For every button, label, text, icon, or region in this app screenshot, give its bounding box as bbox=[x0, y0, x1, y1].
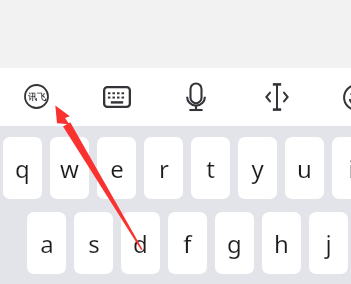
staticText: y bbox=[251, 152, 264, 185]
staticText: q bbox=[15, 152, 30, 185]
button[interactable]: Edit text bbox=[260, 80, 293, 113]
button[interactable]: g bbox=[215, 212, 254, 274]
staticText: i bbox=[348, 152, 351, 185]
staticText: j bbox=[325, 227, 332, 260]
button[interactable]: w bbox=[50, 137, 89, 199]
button[interactable]: y bbox=[238, 137, 277, 199]
button[interactable]: i bbox=[332, 137, 351, 199]
staticText: u bbox=[297, 152, 312, 185]
button[interactable]: u bbox=[285, 137, 324, 199]
button[interactable]: a bbox=[27, 212, 66, 274]
button[interactable]: f bbox=[168, 212, 207, 274]
button[interactable]: Keyboard bbox=[100, 80, 133, 113]
button[interactable]: q bbox=[3, 137, 42, 199]
staticText: t bbox=[206, 152, 215, 185]
staticText: a bbox=[40, 227, 54, 260]
staticText: d bbox=[133, 227, 148, 260]
button[interactable]: Input method bbox=[20, 80, 53, 113]
button[interactable]: Emoji bbox=[340, 81, 351, 114]
staticText: h bbox=[274, 227, 289, 260]
button[interactable]: s bbox=[74, 212, 113, 274]
button[interactable]: j bbox=[309, 212, 348, 274]
button[interactable]: t bbox=[191, 137, 230, 199]
staticText: f bbox=[183, 227, 192, 260]
staticText: s bbox=[88, 227, 100, 260]
staticText: w bbox=[60, 152, 79, 185]
button[interactable]: r bbox=[144, 137, 183, 199]
staticText: e bbox=[110, 152, 124, 185]
staticText: 讯飞 bbox=[28, 91, 46, 102]
staticText: g bbox=[227, 227, 242, 260]
staticText: r bbox=[159, 152, 169, 185]
button[interactable]: h bbox=[262, 212, 301, 274]
button[interactable]: Voice input bbox=[179, 80, 212, 113]
button[interactable]: e bbox=[97, 137, 136, 199]
button[interactable]: d bbox=[121, 212, 160, 274]
